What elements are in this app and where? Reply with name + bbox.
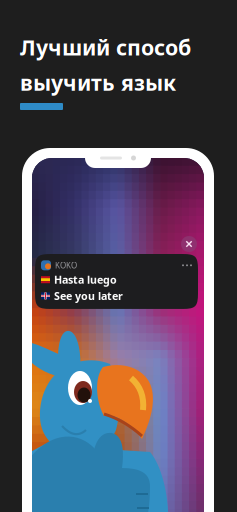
- staticText: KOKO: [55, 260, 77, 271]
- button[interactable]: Close: [181, 236, 197, 252]
- staticText: See you later: [54, 289, 123, 303]
- button[interactable]: KOKO: [35, 254, 198, 309]
- staticText: Hasta luego: [54, 273, 117, 287]
- staticText: Лучший способ: [20, 33, 191, 61]
- staticText: выучить язык: [20, 68, 176, 97]
